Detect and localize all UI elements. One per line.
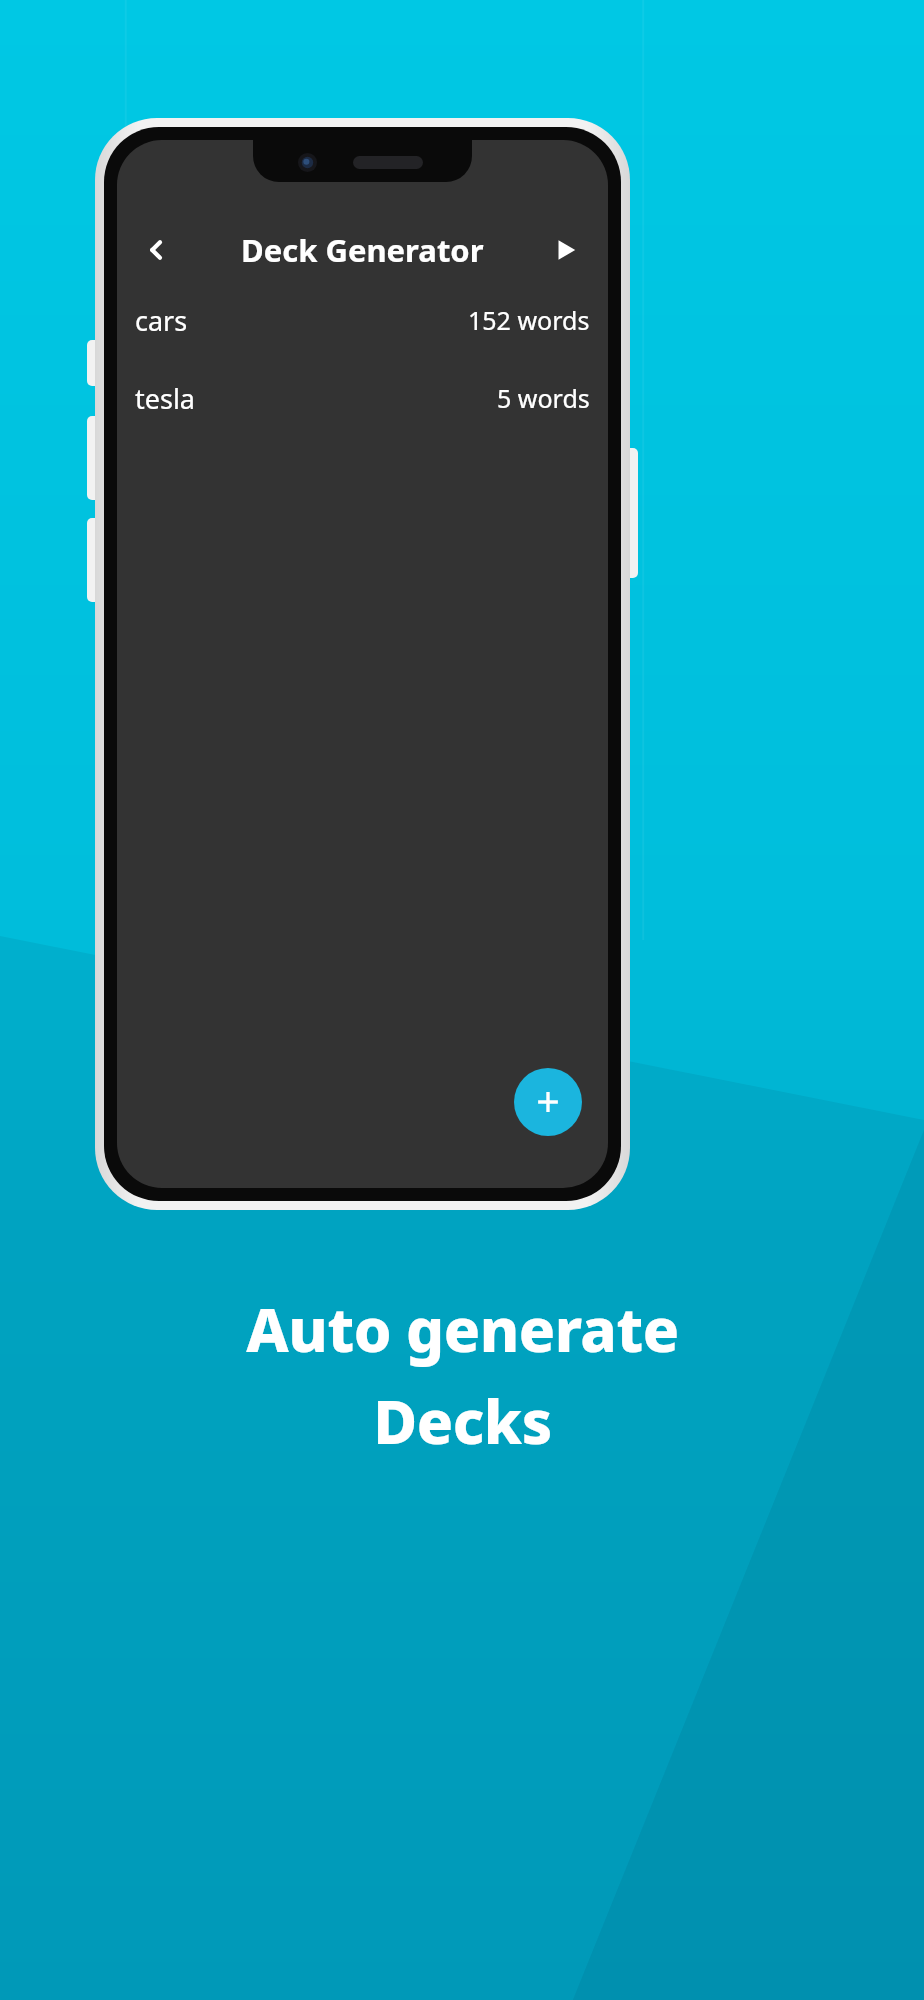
button[interactable]: cars [117,300,608,340]
staticText: tesla [135,380,196,417]
staticText: Deck Generator [241,229,484,271]
button[interactable]: Back [125,218,189,282]
button[interactable]: tesla [117,378,608,418]
button[interactable]: Play [538,222,594,278]
staticText: Decks [373,1380,552,1462]
button[interactable]: Add deck [514,1068,582,1136]
staticText: Auto generate [246,1288,679,1370]
staticText: cars [135,302,188,339]
staticText: 152 words [468,303,590,337]
staticText: 5 words [497,381,590,415]
